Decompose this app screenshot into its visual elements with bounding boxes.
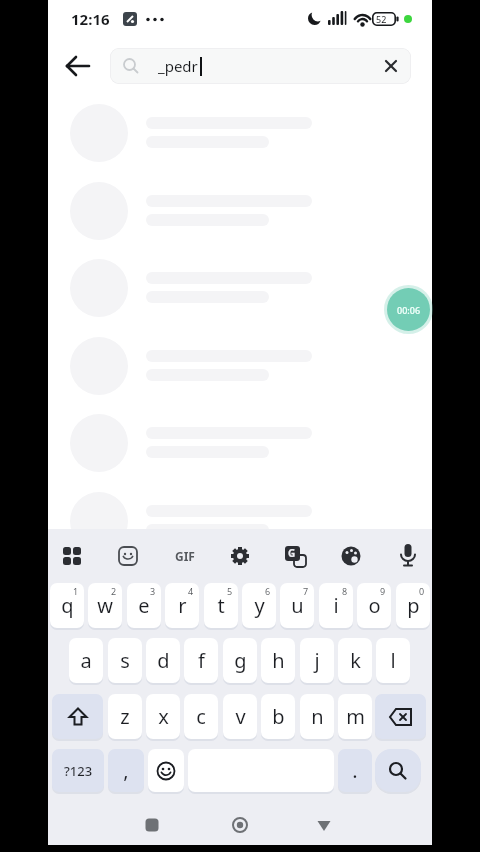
button[interactable]: t	[204, 583, 238, 628]
staticText: c	[196, 703, 206, 730]
button[interactable]: d	[146, 638, 180, 683]
staticText: 9	[380, 585, 386, 597]
button[interactable]: j	[300, 638, 334, 683]
staticText: f	[198, 647, 205, 674]
button[interactable]: s	[108, 638, 142, 683]
button[interactable]: a	[69, 638, 103, 683]
staticText: w	[97, 592, 113, 619]
staticText: t	[217, 592, 225, 619]
button[interactable]: k	[338, 638, 372, 683]
staticText: _pedr	[158, 56, 198, 76]
staticText: z	[120, 703, 130, 730]
button[interactable]: GIF	[170, 546, 200, 566]
staticText: x	[158, 703, 169, 730]
staticText: m	[346, 703, 365, 730]
staticText: h	[272, 647, 285, 674]
button[interactable]: q	[50, 583, 84, 628]
button[interactable]	[229, 545, 251, 567]
button[interactable]: ,	[108, 749, 144, 792]
button[interactable]: w	[88, 583, 122, 628]
staticText: j	[314, 647, 320, 674]
button[interactable]: g	[223, 638, 257, 683]
staticText: 00:06	[397, 304, 421, 316]
button[interactable]: x	[146, 694, 180, 739]
staticText: i	[333, 592, 339, 619]
button[interactable]	[52, 694, 103, 739]
button[interactable]: u	[280, 583, 314, 628]
staticText: G	[288, 546, 296, 560]
staticText: GIF	[175, 548, 195, 564]
button[interactable]: f	[184, 638, 218, 683]
button[interactable]: y	[242, 583, 276, 628]
staticText: 1	[73, 585, 79, 597]
button[interactable]	[232, 817, 248, 833]
staticText: r	[178, 592, 187, 619]
button[interactable]: n	[300, 694, 334, 739]
staticText: ?123	[64, 762, 93, 780]
staticText: d	[157, 647, 170, 674]
button[interactable]	[62, 50, 94, 82]
staticText: 2	[111, 585, 117, 597]
button[interactable]: c	[184, 694, 218, 739]
staticText: e	[138, 592, 150, 619]
button[interactable]: e	[127, 583, 161, 628]
button[interactable]	[375, 749, 421, 792]
staticText: 5	[227, 585, 233, 597]
button[interactable]	[398, 543, 418, 569]
button[interactable]: _pedr	[110, 48, 411, 84]
button[interactable]: z	[108, 694, 142, 739]
staticText: 0	[419, 585, 425, 597]
button[interactable]	[375, 694, 426, 739]
button[interactable]: v	[223, 694, 257, 739]
button[interactable]	[144, 817, 160, 833]
staticText: v	[235, 703, 246, 730]
button[interactable]: ?123	[52, 749, 104, 792]
button[interactable]: i	[319, 583, 353, 628]
button[interactable]	[340, 545, 362, 567]
button[interactable]	[61, 545, 83, 567]
staticText: 7	[303, 585, 309, 597]
staticText: p	[407, 592, 420, 619]
staticText: 6	[265, 585, 271, 597]
button[interactable]: r	[165, 583, 199, 628]
staticText: a	[80, 647, 92, 674]
staticText: 12:16	[71, 9, 110, 29]
button[interactable]: .	[338, 749, 372, 792]
button[interactable]: h	[261, 638, 295, 683]
staticText: b	[272, 703, 285, 730]
staticText: u	[291, 592, 304, 619]
staticText: 3	[150, 585, 156, 597]
button[interactable]: G	[284, 545, 307, 568]
staticText: ,	[123, 757, 129, 784]
staticText: n	[311, 703, 324, 730]
staticText: y	[254, 592, 265, 619]
staticText: 8	[342, 585, 348, 597]
staticText: .	[352, 757, 358, 784]
button[interactable]: l	[376, 638, 410, 683]
button[interactable]	[117, 545, 139, 567]
staticText: 52	[376, 13, 387, 25]
button[interactable]: p	[396, 583, 430, 628]
staticText: l	[390, 647, 396, 674]
staticText: 4	[188, 585, 194, 597]
button[interactable]: m	[338, 694, 372, 739]
button[interactable]	[316, 818, 332, 834]
staticText: g	[234, 647, 247, 674]
staticText: o	[368, 592, 381, 619]
staticText: q	[61, 592, 74, 619]
button[interactable]: o	[357, 583, 391, 628]
button[interactable]: b	[261, 694, 295, 739]
staticText: k	[350, 647, 361, 674]
staticText: s	[120, 647, 130, 674]
button[interactable]	[148, 749, 184, 792]
